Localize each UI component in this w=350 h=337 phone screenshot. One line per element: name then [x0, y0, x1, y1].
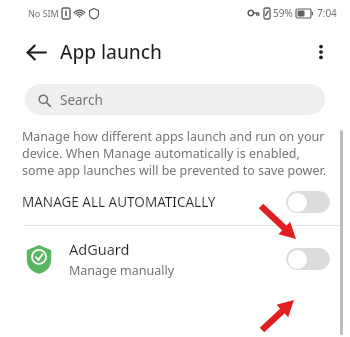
button[interactable]: Back: [18, 34, 54, 70]
staticText: No SIM: [28, 7, 59, 19]
button[interactable]: Search: [25, 84, 325, 115]
staticText: MANAGE ALL AUTOMATICALLY: [22, 193, 286, 211]
button[interactable]: Toggle: [286, 248, 330, 270]
button[interactable]: AdGuard: [0, 226, 350, 292]
button[interactable]: Toggle: [286, 191, 330, 213]
staticText: 59%: [273, 6, 293, 20]
staticText: App launch: [60, 39, 163, 65]
staticText: Search: [60, 91, 103, 109]
staticText: AdGuard: [69, 239, 130, 259]
staticText: Manage manually: [69, 262, 175, 279]
staticText: 7:04: [317, 6, 337, 20]
staticText: Manage how different apps launch and run…: [22, 128, 326, 179]
button[interactable]: More options: [304, 35, 338, 69]
button[interactable]: MANAGE ALL AUTOMATICALLY: [0, 179, 350, 225]
